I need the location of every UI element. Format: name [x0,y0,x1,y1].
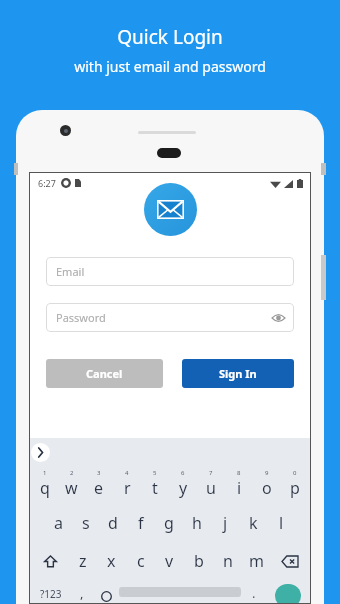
staticText: 4 [125,469,129,477]
button[interactable]: l [267,504,295,542]
button[interactable]: c [126,542,155,580]
staticText: 1 [43,469,47,477]
staticText: Quick Login [117,24,223,50]
staticText: c [137,550,145,572]
button[interactable]: More suggestions [31,443,50,462]
staticText: m [249,550,264,572]
staticText: n [223,550,233,572]
button[interactable]: j [211,504,239,542]
staticText: y [179,477,188,499]
staticText: ?123 [40,587,62,601]
staticText: d [108,512,118,534]
button[interactable]: 2 [58,466,85,504]
button[interactable]: n [213,542,242,580]
button[interactable]: x [97,542,126,580]
staticText: f [138,512,144,534]
button[interactable]: 0 [281,466,309,504]
staticText: b [194,550,204,572]
button[interactable]: 9 [253,466,281,504]
button[interactable]: v [155,542,184,580]
staticText: , [80,584,84,602]
staticText: 3 [97,469,101,477]
button[interactable]: 6 [169,466,197,504]
button[interactable]: Password [46,303,294,332]
staticText: v [165,550,174,572]
button[interactable]: Emoji [93,580,119,604]
button[interactable]: b [184,542,213,580]
button[interactable]: f [127,504,155,542]
staticText: h [192,512,202,534]
button[interactable]: Cancel [46,359,163,388]
staticText: x [107,550,116,572]
button[interactable]: h [183,504,211,542]
button[interactable]: Email [46,257,294,286]
staticText: q [40,477,50,499]
staticText: 2 [70,469,74,477]
staticText: . [252,584,256,602]
staticText: w [65,477,78,499]
button[interactable]: 4 [113,466,141,504]
staticText: 8 [237,469,241,477]
button[interactable]: d [99,504,127,542]
button[interactable]: 8 [225,466,253,504]
staticText: o [262,477,272,499]
button[interactable]: k [239,504,267,542]
button[interactable]: m [242,542,271,580]
staticText: Email [56,264,85,279]
staticText: Password [56,310,106,325]
button[interactable]: 3 [85,466,113,504]
staticText: Cancel [86,366,123,381]
staticText: 0 [293,469,297,477]
button[interactable]: g [155,504,183,542]
button[interactable]: Email [144,183,197,236]
button[interactable]: 7 [197,466,225,504]
staticText: g [164,512,174,534]
staticText: a [54,512,63,534]
button[interactable]: 5 [141,466,169,504]
staticText: 6:27 [38,177,56,189]
button[interactable]: , [70,580,93,604]
staticText: with just email and password [74,57,266,76]
staticText: l [279,512,284,534]
staticText: Sign In [219,366,257,381]
staticText: 7 [209,469,213,477]
staticText: 5 [153,469,157,477]
staticText: i [237,477,242,499]
button[interactable]: Show password [270,310,286,326]
staticText: r [124,477,131,499]
button[interactable]: Sign In [182,359,294,388]
staticText: e [94,477,104,499]
button[interactable]: a [45,504,72,542]
button[interactable]: Backspace [271,542,308,580]
button[interactable]: s [72,504,99,542]
button[interactable]: . [241,580,267,604]
button[interactable]: 1 [31,466,58,504]
staticText: s [82,512,90,534]
staticText: 6 [181,469,185,477]
staticText: p [290,477,300,499]
button[interactable]: ?123 [32,580,70,604]
staticText: z [79,550,87,572]
button[interactable]: Enter [275,584,301,604]
button[interactable]: Shift [32,542,68,580]
staticText: t [152,477,158,499]
staticText: j [223,512,228,534]
staticText: k [249,512,258,534]
staticText: 9 [265,469,269,477]
staticText: u [206,477,216,499]
button[interactable]: z [68,542,97,580]
